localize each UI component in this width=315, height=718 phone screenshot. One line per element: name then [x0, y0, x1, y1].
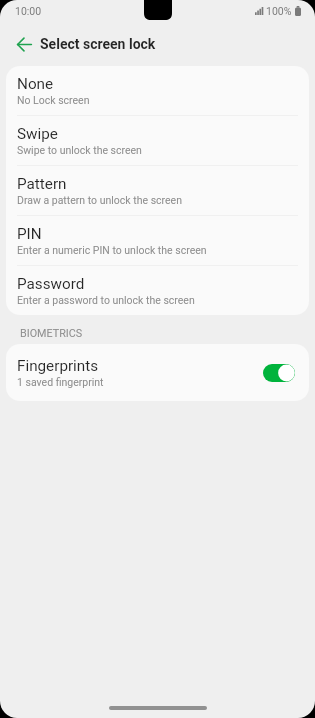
staticText: No Lock screen: [17, 94, 90, 106]
staticText: Enter a numeric PIN to unlock the screen: [17, 244, 207, 256]
button[interactable]: Fingerprints: [6, 344, 309, 401]
button[interactable]: Fingerprints on: [263, 364, 295, 382]
button[interactable]: Password: [6, 266, 309, 315]
staticText: BIOMETRICS: [20, 327, 83, 340]
staticText: 1 saved fingerprint: [17, 376, 104, 388]
button[interactable]: None: [6, 66, 309, 115]
staticText: Swipe: [17, 125, 58, 143]
button[interactable]: PIN: [6, 216, 309, 265]
staticText: None: [17, 75, 54, 93]
button[interactable]: Pattern: [6, 166, 309, 215]
button[interactable]: Back: [7, 27, 41, 61]
staticText: Draw a pattern to unlock the screen: [17, 194, 182, 206]
staticText: 100%: [266, 5, 292, 17]
staticText: PIN: [17, 225, 42, 243]
button[interactable]: Swipe: [6, 116, 309, 165]
staticText: Swipe to unlock the screen: [17, 144, 142, 156]
staticText: Fingerprints: [17, 357, 99, 375]
staticText: Enter a password to unlock the screen: [17, 294, 195, 306]
staticText: Pattern: [17, 175, 67, 193]
staticText: 10:00: [15, 5, 42, 17]
staticText: Select screen lock: [40, 36, 156, 52]
staticText: Password: [17, 275, 85, 293]
